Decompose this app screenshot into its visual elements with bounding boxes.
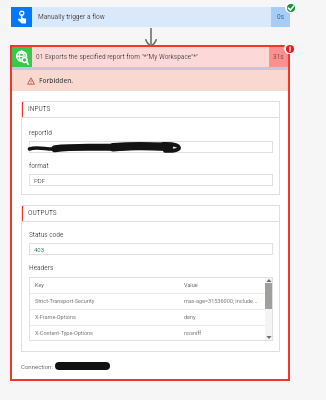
staticText: INPUTS	[28, 105, 51, 113]
staticText: 31s	[273, 53, 284, 61]
staticText: Forbidden.	[39, 76, 74, 85]
staticText: X-Content-Type-Options	[35, 330, 184, 336]
button[interactable]: Manually trigger a flow	[11, 7, 290, 27]
staticText: Strict-Transport-Security	[35, 298, 184, 304]
staticText: Connection:	[21, 363, 53, 370]
staticText: reportId	[29, 129, 52, 137]
staticText: Status code	[29, 231, 64, 239]
staticText: nosniff	[184, 330, 262, 336]
staticText: Manually trigger a flow	[38, 13, 105, 21]
staticText: max-age=31536000; include...	[184, 298, 262, 304]
staticText: deny	[184, 314, 262, 320]
staticText: OUTPUTS	[28, 209, 57, 217]
staticText: Key	[35, 282, 184, 288]
button[interactable]: OUTPUTS	[21, 205, 280, 221]
other: Failed	[284, 43, 295, 54]
staticText: 403	[34, 246, 45, 253]
button[interactable]: 01 Exports the specified report from "*"…	[12, 47, 288, 67]
staticText: X-Frame-Options	[35, 314, 184, 320]
staticText: Value	[184, 282, 262, 288]
staticText: 0s	[277, 13, 285, 21]
staticText: PDF	[34, 177, 46, 184]
staticText: 01 Exports the specified report from "*"…	[36, 53, 199, 61]
staticText: Headers	[29, 264, 54, 272]
staticText: format	[29, 162, 49, 170]
button[interactable]: INPUTS	[21, 101, 280, 117]
other: Succeeded	[285, 2, 296, 13]
